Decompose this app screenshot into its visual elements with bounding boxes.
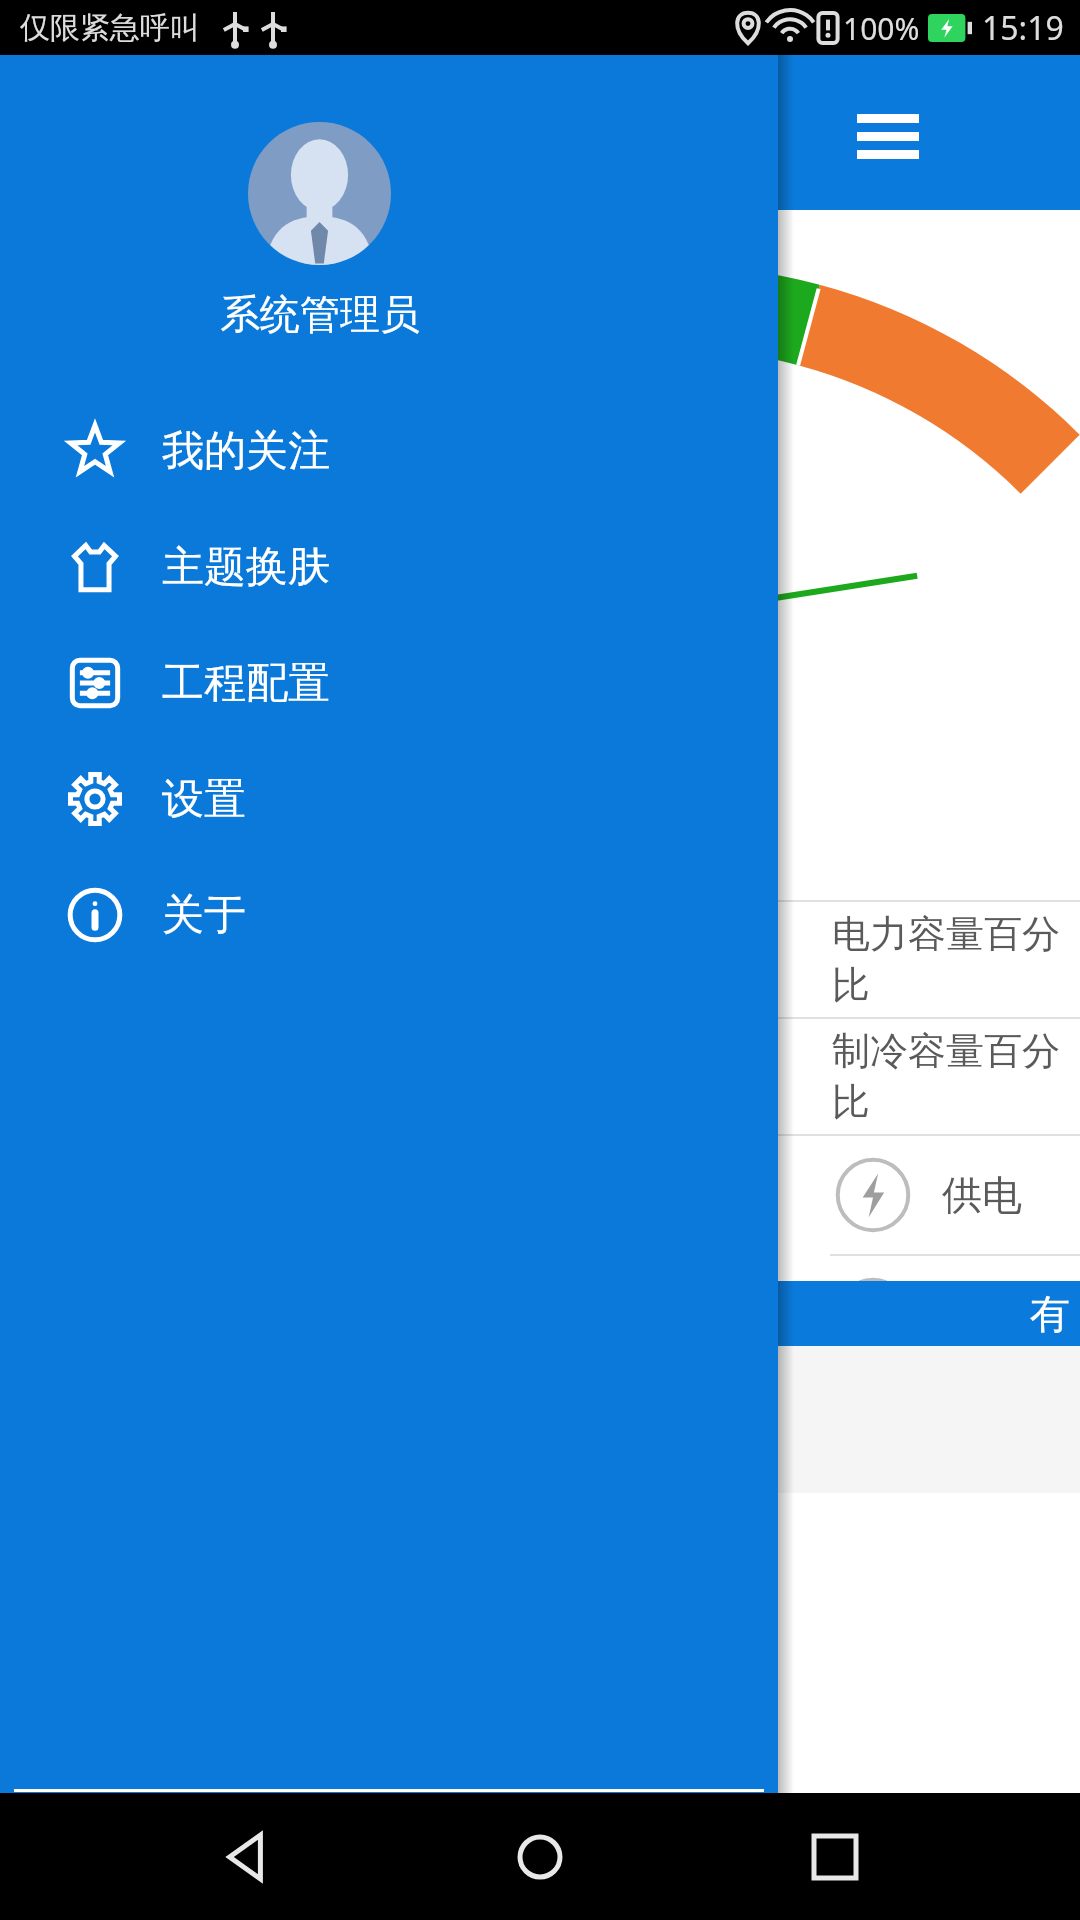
button[interactable]: 总览: [660, 1346, 830, 1493]
staticText: 设置: [162, 773, 246, 826]
staticText: 关于: [162, 889, 246, 942]
button[interactable]: 注销: [0, 1792, 778, 1920]
button[interactable]: 电力容量百分比: [0, 902, 1080, 1017]
button[interactable]: Home: [490, 1807, 590, 1907]
staticText: 我的关注: [162, 425, 330, 478]
staticText: 系统管理员: [0, 289, 640, 339]
staticText: 主题换肤: [162, 541, 330, 594]
button[interactable]: Back: [195, 1807, 295, 1907]
staticText: 制冷容量百分比: [832, 1027, 1080, 1127]
button[interactable]: 设置: [0, 741, 778, 857]
button[interactable]: 关于: [0, 857, 778, 973]
button[interactable]: 工程配置: [0, 625, 778, 741]
button[interactable]: 供电: [0, 1136, 1080, 1254]
button[interactable]: 我的关注: [0, 393, 778, 509]
staticText: 15:19: [982, 6, 1064, 50]
button[interactable]: 主题换肤: [0, 509, 778, 625]
button[interactable]: Recent apps: [785, 1807, 885, 1907]
staticText: 电力容量百分比: [832, 910, 1080, 1010]
staticText: 有: [1030, 1289, 1070, 1339]
button[interactable]: Open navigation menu: [843, 88, 933, 178]
button[interactable]: 空调: [0, 1256, 1080, 1374]
button[interactable]: 制冷容量百分比: [0, 1019, 1080, 1134]
staticText: 100%: [843, 8, 920, 49]
staticText: 工程配置: [162, 657, 330, 710]
staticText: 供电: [942, 1170, 1022, 1220]
staticText: 仅限紧急呼叫: [20, 9, 200, 47]
